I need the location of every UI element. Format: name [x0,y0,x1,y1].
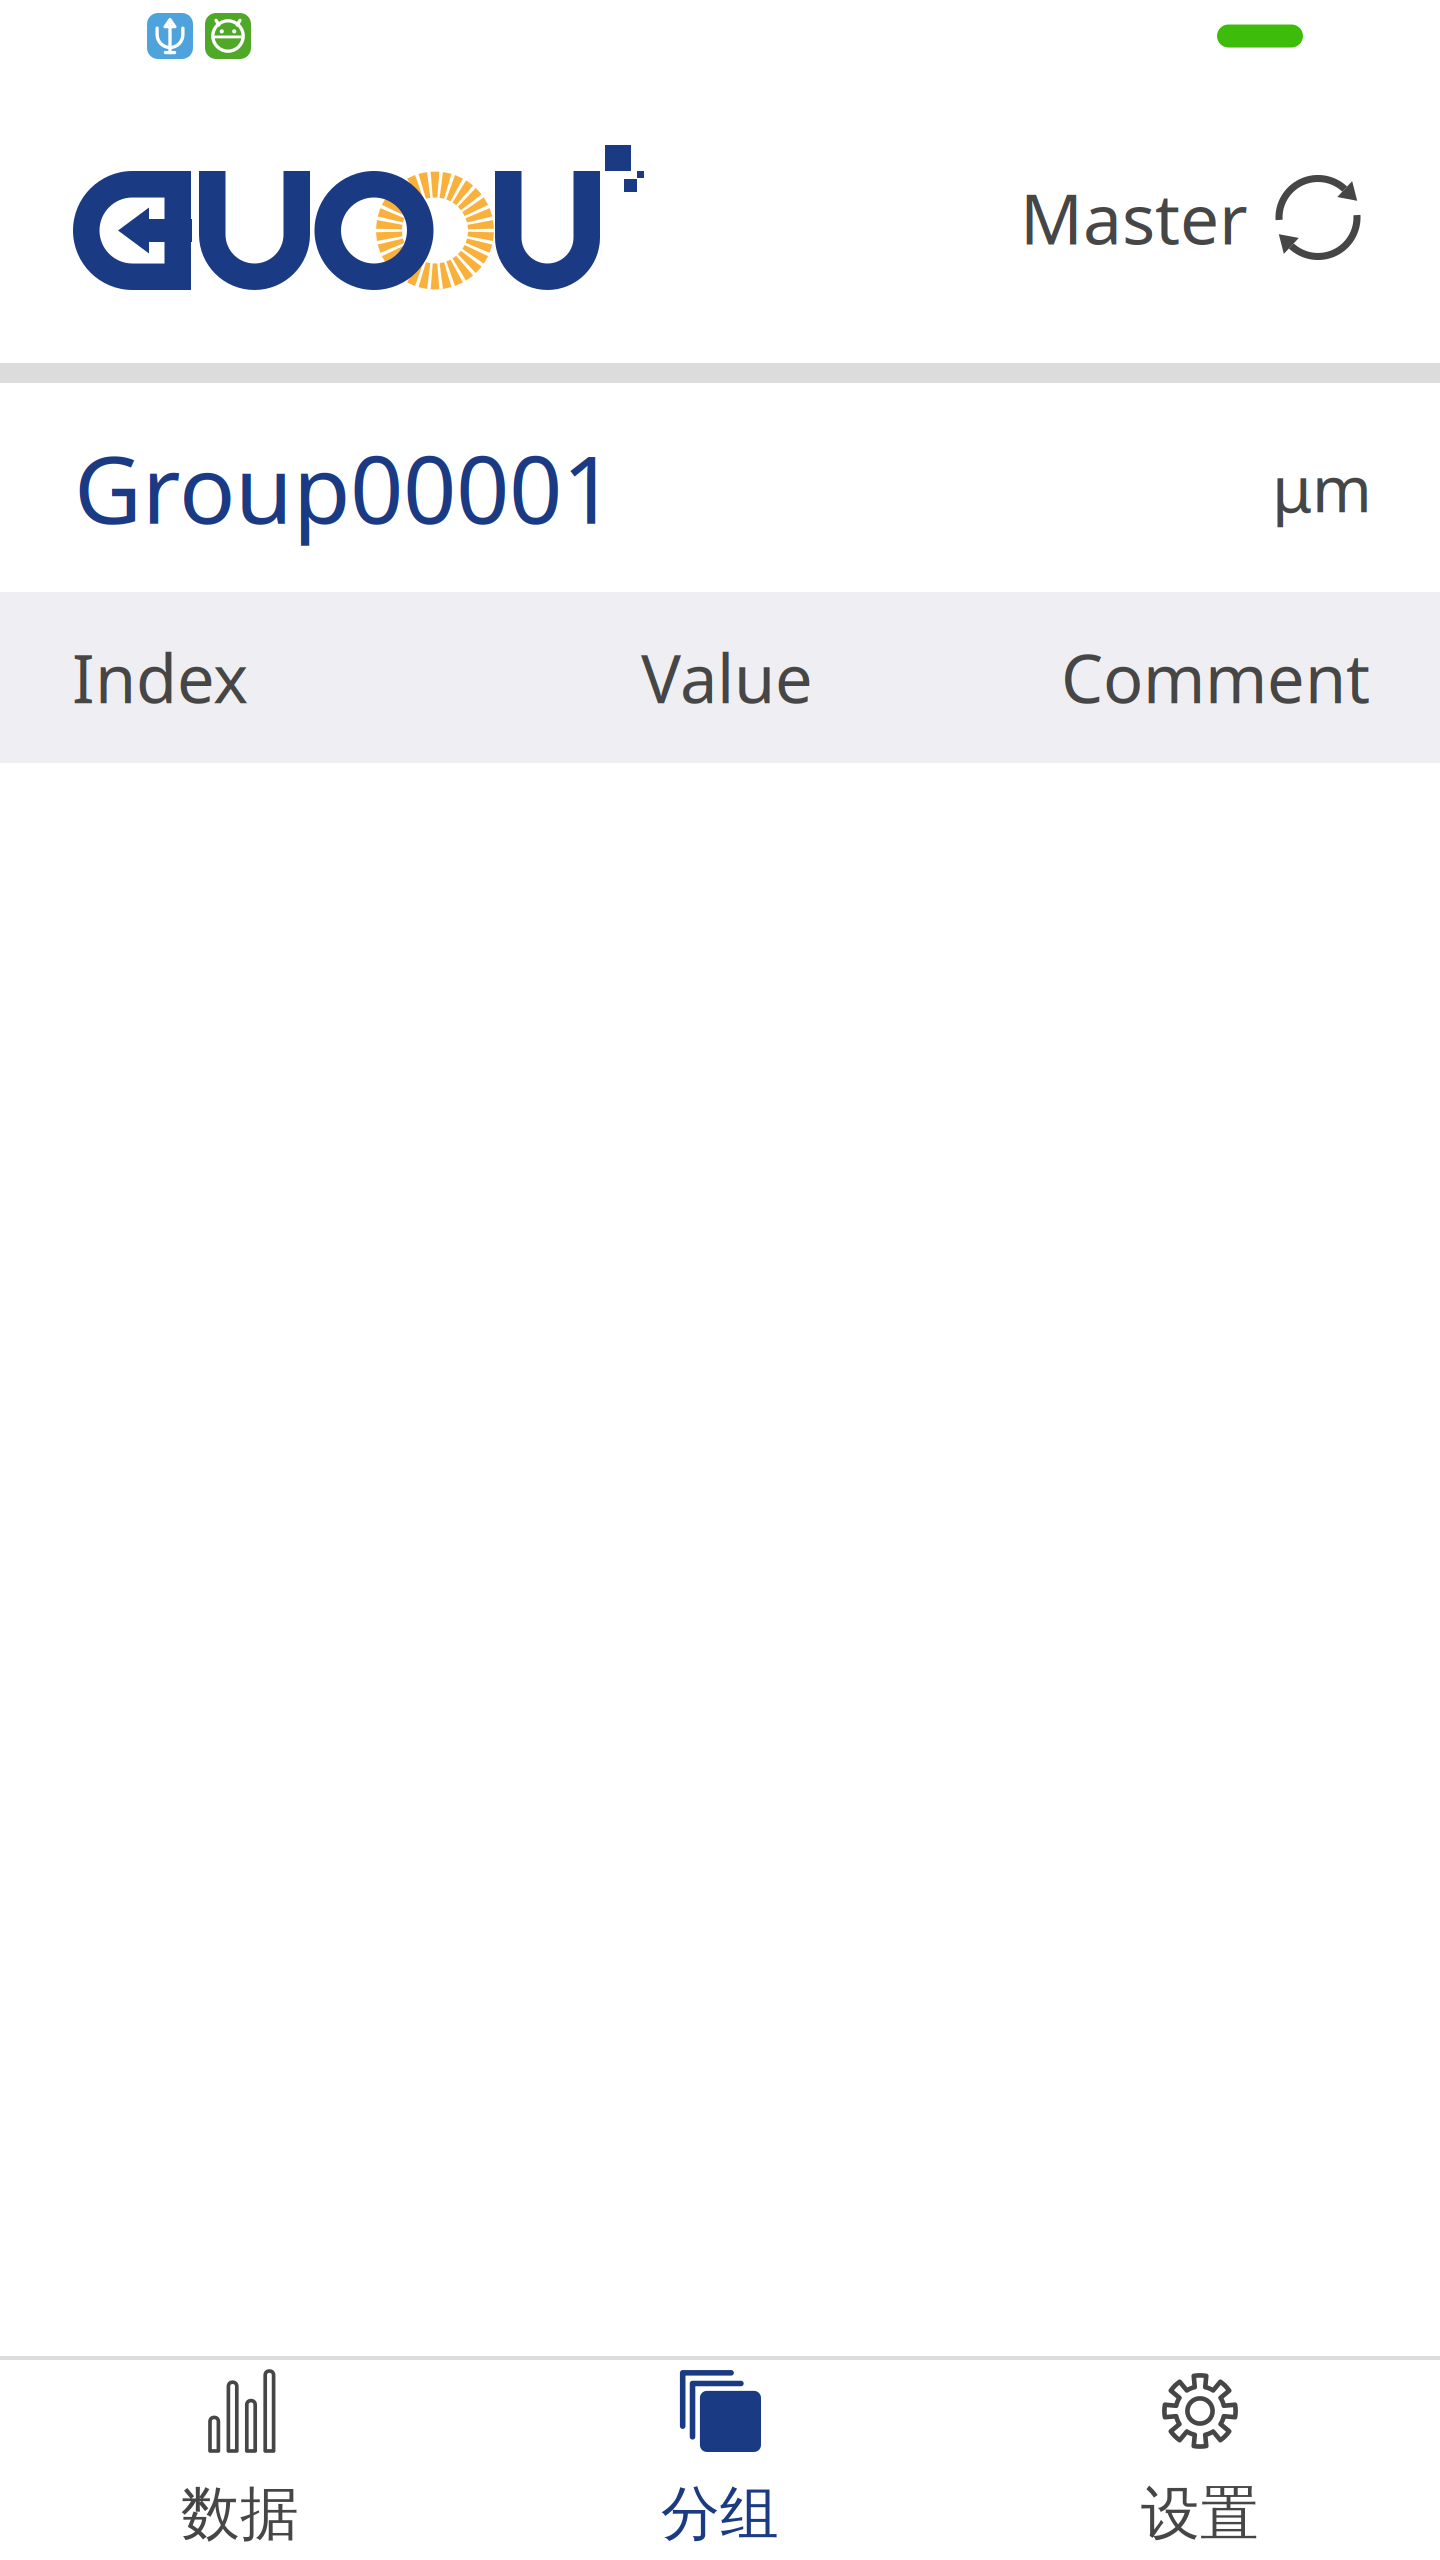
staticText: Value [641,633,813,722]
staticText: 设置 [1141,2478,1259,2550]
button[interactable]: 设置 [960,2360,1440,2560]
staticText: Index [72,633,248,722]
staticText: Master [1020,171,1248,264]
button[interactable]: 分组 [480,2360,960,2560]
staticText: Comment [1061,633,1370,722]
button[interactable]: Group00001 [0,383,1440,592]
button[interactable]: Master, refresh [1020,165,1370,269]
staticText: μm [1272,445,1372,530]
button[interactable]: 数据 [0,2360,480,2560]
staticText: 数据 [181,2478,299,2550]
staticText: Group00001 [74,425,615,549]
staticText: 分组 [661,2478,779,2550]
